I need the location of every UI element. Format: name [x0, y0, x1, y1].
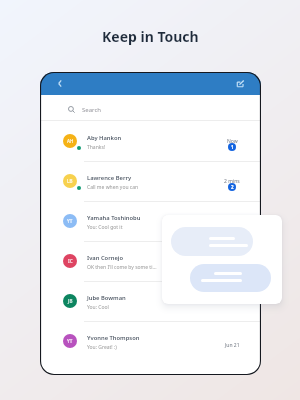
- staticText: Search: [82, 106, 101, 114]
- staticText: Keep in Touch: [102, 27, 199, 46]
- staticText: You: Cool: [87, 304, 109, 311]
- staticText: Aby Hankon: [87, 134, 122, 142]
- staticText: LB: [67, 178, 73, 184]
- staticText: Ivan Cornejo: [87, 254, 124, 262]
- staticText: Lawrence Berry: [87, 174, 132, 182]
- staticText: AH: [67, 138, 74, 144]
- button[interactable]: YT: [40, 321, 261, 361]
- staticText: IC: [68, 258, 73, 264]
- staticText: 1: [231, 144, 234, 150]
- staticText: YT: [67, 218, 73, 224]
- staticText: Jun 21: [225, 342, 240, 349]
- staticText: Yvonne Thompson: [87, 334, 140, 342]
- staticText: YT: [67, 338, 73, 344]
- staticText: 2: [231, 184, 234, 190]
- staticText: Now: [227, 138, 238, 145]
- staticText: JB: [68, 298, 73, 304]
- button[interactable]: IC: [40, 241, 261, 281]
- staticText: Yamaha Toshinobu: [87, 214, 141, 222]
- staticText: Call me when you can: [87, 184, 139, 191]
- button[interactable]: AH: [40, 121, 261, 161]
- staticText: You: Great! :): [87, 344, 117, 351]
- staticText: OK then I'll come by some ti...: [87, 264, 157, 271]
- button[interactable]: YT: [40, 201, 261, 241]
- staticText: Thanks!: [87, 144, 106, 151]
- staticText: Jube Bowman: [87, 294, 126, 302]
- staticText: 2 mins: [224, 178, 240, 185]
- button[interactable]: Search: [40, 95, 261, 120]
- button[interactable]: JB: [40, 281, 261, 321]
- button[interactable]: Back: [51, 75, 68, 92]
- staticText: You: Cool got it: [87, 224, 123, 231]
- button[interactable]: Compose new message: [232, 75, 249, 92]
- button[interactable]: LB: [40, 161, 261, 201]
